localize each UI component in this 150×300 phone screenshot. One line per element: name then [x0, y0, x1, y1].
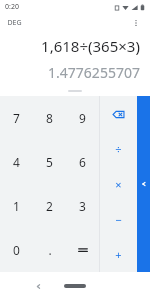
button[interactable]: Expand advanced pad — [137, 96, 150, 272]
staticText: − — [115, 212, 122, 227]
button[interactable]: 7 — [0, 96, 33, 140]
button[interactable]: 0 — [0, 228, 33, 272]
button[interactable]: 8 — [33, 96, 66, 140]
staticText: 4 — [13, 154, 20, 170]
staticText: 0:20 — [5, 2, 19, 12]
staticText: 1 — [13, 198, 20, 214]
staticText: 5 — [46, 154, 53, 170]
button[interactable] — [66, 228, 99, 272]
button[interactable]: Backspace — [100, 96, 137, 132]
button[interactable]: More options — [129, 16, 143, 30]
staticText: 1.4776255707 — [48, 63, 140, 82]
staticText: 8 — [46, 110, 53, 126]
staticText: 1,618÷(365×3) — [41, 36, 140, 56]
staticText: 3 — [79, 198, 86, 214]
button[interactable]: Home — [58, 278, 92, 294]
staticText: 7 — [13, 110, 20, 126]
button[interactable]: Back — [28, 272, 48, 300]
staticText: ÷ — [115, 142, 122, 157]
staticText: 9 — [79, 110, 86, 126]
button[interactable]: . — [33, 228, 66, 272]
staticText: 2 — [46, 198, 53, 214]
button[interactable]: 4 — [0, 140, 33, 184]
staticText: 0 — [13, 242, 20, 258]
staticText: × — [115, 177, 122, 192]
button[interactable]: ÷ — [100, 132, 137, 167]
button[interactable]: 2 — [33, 184, 66, 228]
button[interactable]: 3 — [66, 184, 99, 228]
button[interactable]: 6 — [66, 140, 99, 184]
button[interactable]: 9 — [66, 96, 99, 140]
button[interactable]: − — [100, 202, 137, 237]
staticText: 6 — [79, 154, 86, 170]
button[interactable]: × — [100, 167, 137, 202]
button[interactable]: + — [100, 237, 137, 272]
staticText: + — [115, 247, 122, 262]
button[interactable]: 5 — [33, 140, 66, 184]
button[interactable]: 1 — [0, 184, 33, 228]
staticText: DEG — [7, 18, 22, 28]
staticText: . — [48, 242, 52, 258]
